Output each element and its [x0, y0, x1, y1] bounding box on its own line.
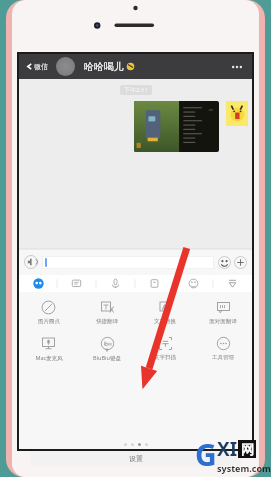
button[interactable]: 快捷翻译 [78, 298, 136, 326]
button[interactable]: BiuBiu键盘 [78, 334, 136, 363]
button[interactable]: Sticker [226, 101, 248, 126]
staticText: G [195, 434, 217, 475]
staticText: 哈哈喝儿 [84, 60, 124, 73]
staticText: 文本替换 [154, 318, 176, 325]
button[interactable]: Image message [134, 101, 219, 152]
staticText: 面对面翻译 [209, 318, 237, 325]
button[interactable]: More [227, 61, 247, 73]
button[interactable]: 文字扫描 [136, 334, 194, 362]
button[interactable]: Tab 4 [135, 275, 174, 292]
button[interactable]: 设置 [31, 451, 241, 466]
button[interactable]: 文本替换 [136, 298, 194, 326]
staticText: system.com [217, 462, 271, 474]
button[interactable]: Emoji [218, 256, 231, 269]
button[interactable]: Avatar [56, 57, 75, 76]
staticText: XI [217, 436, 238, 462]
button[interactable]: 微信 [24, 60, 50, 73]
staticText: 微信 [34, 62, 48, 71]
button[interactable]: 工具管理 [194, 334, 252, 362]
staticText: Mac麦克风 [35, 354, 63, 362]
button[interactable]: Voice input [24, 255, 38, 269]
button[interactable]: Tab 6 [213, 275, 252, 292]
button[interactable] [42, 256, 214, 269]
staticText: 快捷翻译 [96, 318, 118, 325]
button[interactable]: 图片圈点 [19, 298, 78, 326]
staticText: BiuBiu键盘 [93, 354, 121, 362]
staticText: 网 [241, 441, 254, 457]
button[interactable]: 面对面翻译 [194, 298, 252, 326]
staticText: 图片圈点 [38, 318, 60, 325]
staticText: 设置 [129, 454, 143, 463]
button[interactable]: More functions [234, 256, 247, 269]
staticText: 文字扫描 [154, 354, 176, 361]
button[interactable]: Tab 3 [96, 275, 135, 292]
button[interactable]: Tab 2 [57, 275, 96, 292]
staticText: 下午2:11 [124, 86, 148, 94]
button[interactable]: Tab 5 [174, 275, 213, 292]
staticText: 工具管理 [212, 354, 234, 361]
button[interactable]: Tab 1 [19, 275, 57, 292]
button[interactable]: Mac麦克风 [19, 334, 78, 363]
